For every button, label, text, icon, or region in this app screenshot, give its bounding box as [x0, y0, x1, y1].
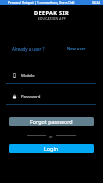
staticText: New user [67, 46, 86, 52]
other: Mobile number [12, 73, 17, 78]
button[interactable]: Forgot password [9, 117, 94, 126]
staticText: or [49, 134, 53, 139]
staticText: 04:24 [92, 1, 100, 5]
button[interactable]: New user [67, 46, 86, 52]
staticText: Mobile [21, 72, 35, 78]
other: Password [12, 94, 17, 99]
staticText: Password [21, 93, 41, 99]
button[interactable]: Already a user ? [12, 46, 45, 52]
staticText: Forgot password [30, 118, 73, 125]
button[interactable]: Login [9, 144, 94, 153]
staticText: Login [44, 145, 59, 152]
staticText: DEEPAK SIR [34, 9, 70, 17]
staticText: EDUCATION APP [38, 17, 66, 21]
staticText: Already a user ? [12, 46, 45, 52]
staticText: Personal Hotspot | 1 connections, Users … [8, 1, 75, 5]
